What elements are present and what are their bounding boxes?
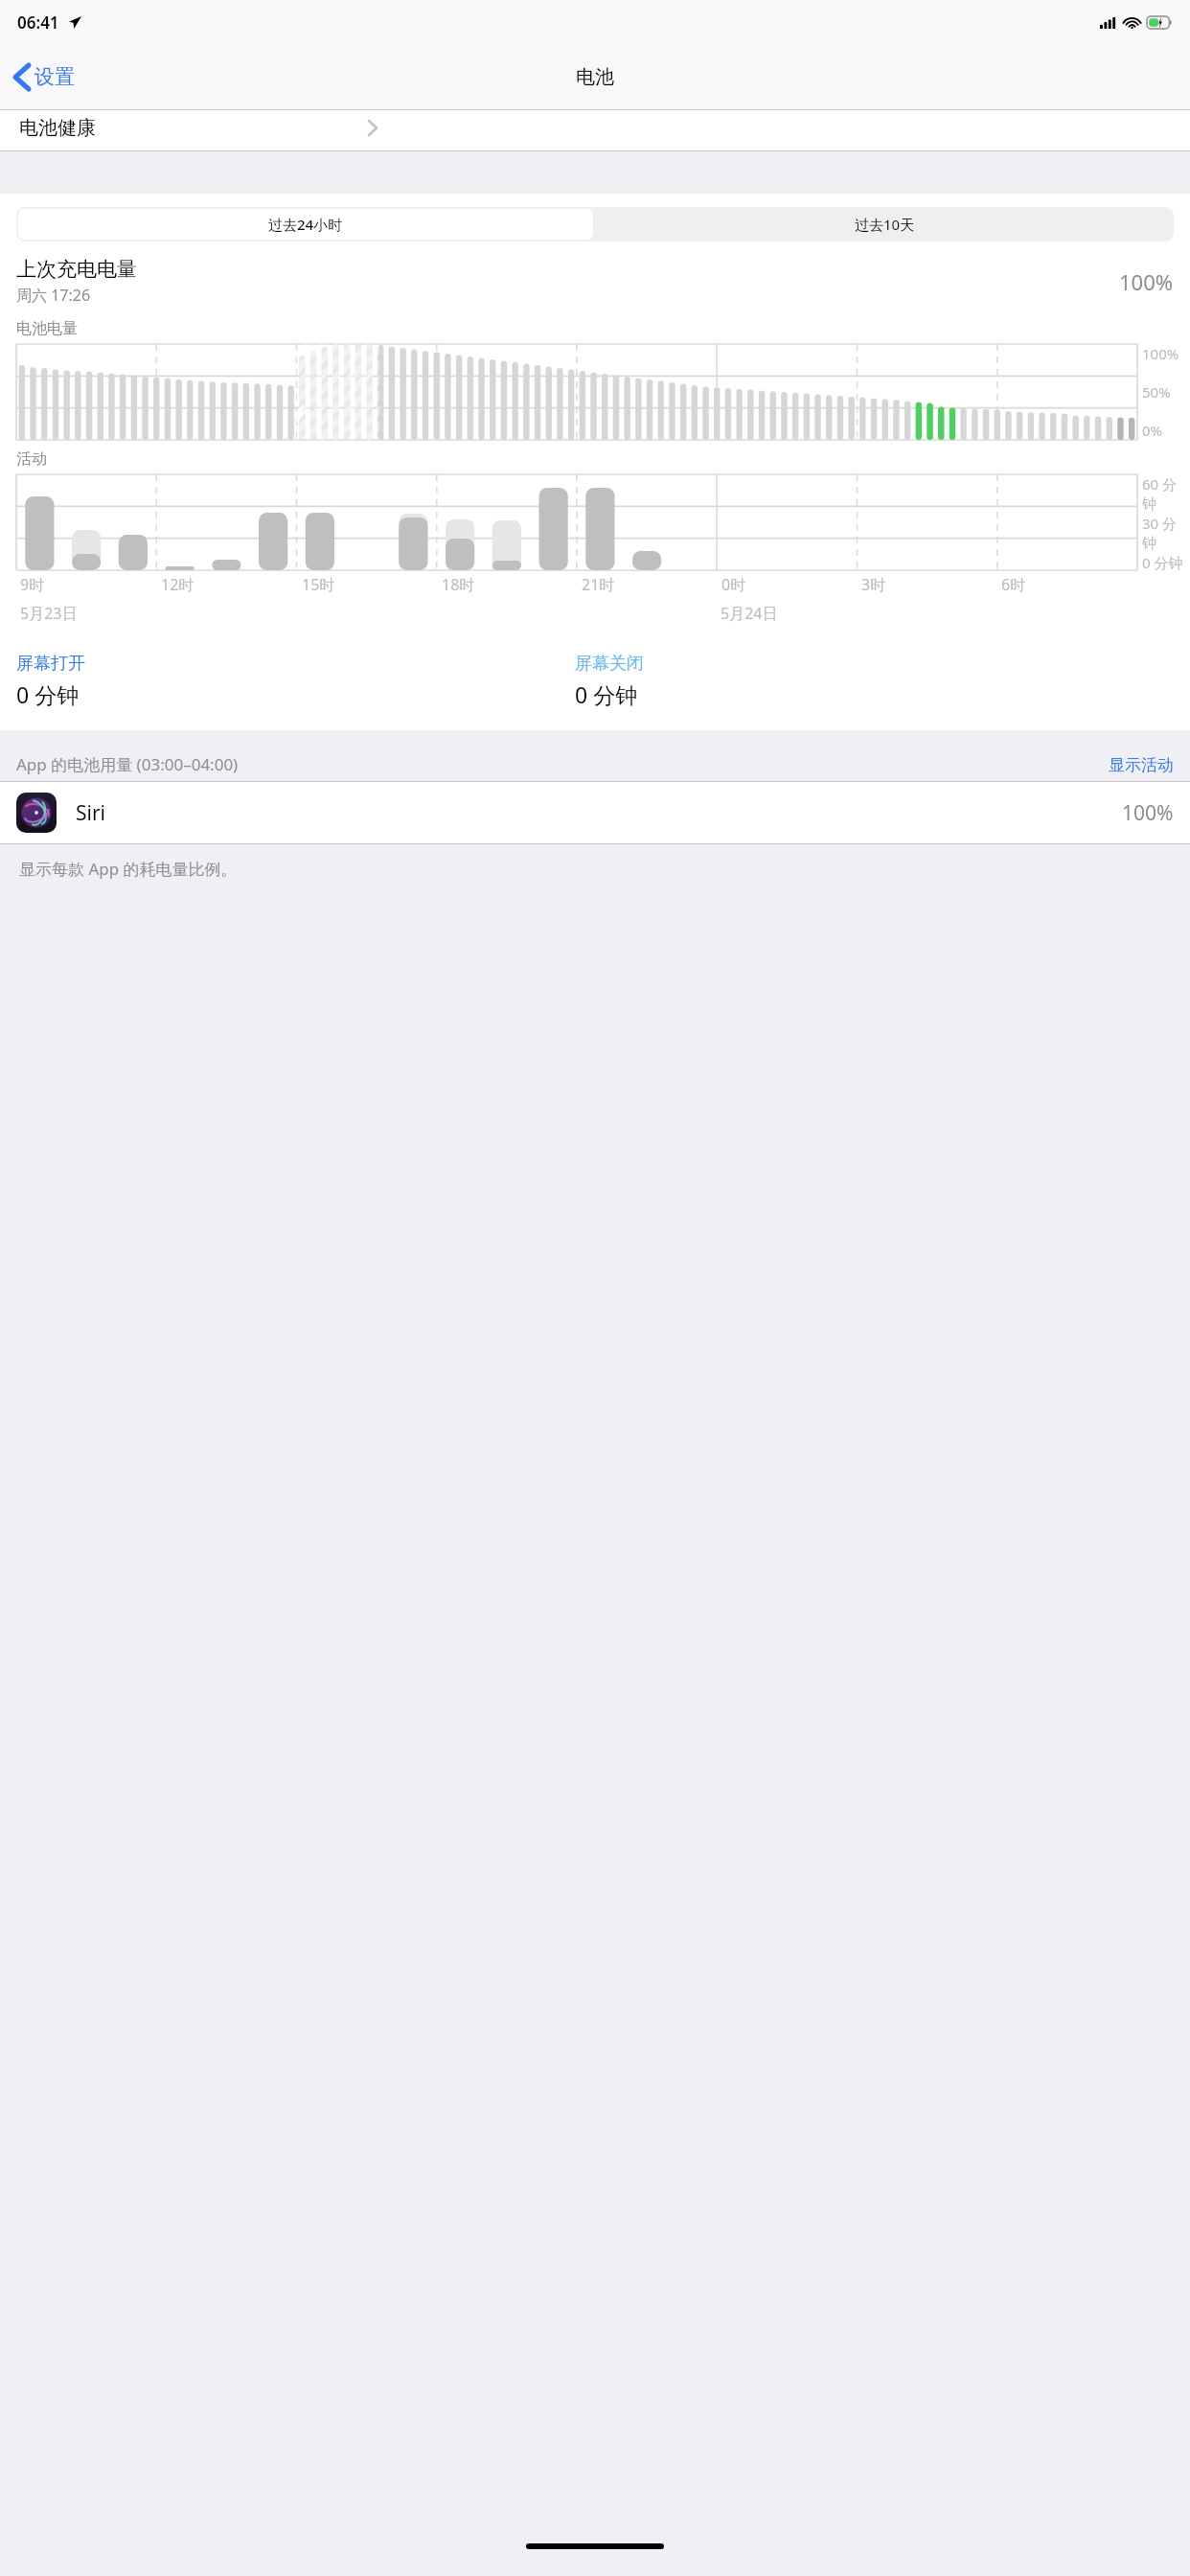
- staticText: 上次充电电量: [16, 257, 137, 282]
- staticText: 15时: [302, 574, 335, 595]
- staticText: 电池电量: [16, 319, 78, 338]
- staticText: 3时: [861, 574, 886, 595]
- staticText: 电池健康: [19, 116, 96, 140]
- staticText: 过去24小时: [268, 215, 343, 234]
- staticText: 30 分钟: [1142, 514, 1190, 553]
- staticText: 电池: [576, 65, 614, 89]
- button[interactable]: 显示活动: [1109, 755, 1174, 781]
- staticText: Siri: [76, 799, 1122, 827]
- staticText: 18时: [442, 574, 475, 595]
- staticText: 5月23日: [20, 603, 78, 624]
- staticText: 60 分钟: [1142, 474, 1190, 514]
- staticText: App 的电池用量 (03:00–04:00): [16, 753, 1109, 775]
- staticText: 100%: [1142, 344, 1179, 363]
- staticText: 100%: [1119, 267, 1174, 296]
- staticText: 0 分钟: [1142, 553, 1183, 570]
- staticText: 5月24日: [721, 603, 778, 624]
- button[interactable]: Siri: [16, 782, 1174, 843]
- staticText: 06:41: [17, 11, 59, 34]
- staticText: 显示每款 App 的耗电量比例。: [19, 858, 238, 880]
- staticText: 50%: [1142, 382, 1171, 402]
- staticText: 0 分钟: [16, 679, 80, 709]
- staticText: 9时: [20, 574, 45, 595]
- staticText: 12时: [161, 574, 195, 595]
- staticText: 100%: [1122, 799, 1174, 827]
- staticText: 0%: [1142, 421, 1163, 440]
- button[interactable]: 设置: [10, 64, 75, 89]
- button[interactable]: 过去24小时: [18, 209, 593, 240]
- staticText: 屏幕打开: [16, 653, 85, 675]
- button[interactable]: 电池健康: [0, 110, 1190, 150]
- staticText: 周六 17:26: [16, 285, 91, 306]
- staticText: 21时: [582, 574, 615, 595]
- staticText: 活动: [16, 449, 47, 469]
- staticText: 设置: [34, 64, 75, 89]
- staticText: 6时: [1001, 574, 1026, 595]
- staticText: 显示活动: [1109, 755, 1174, 775]
- staticText: 过去10天: [855, 215, 915, 234]
- staticText: 0 分钟: [575, 679, 638, 709]
- staticText: 0时: [721, 574, 746, 595]
- staticText: 屏幕关闭: [575, 653, 644, 675]
- button[interactable]: 过去10天: [595, 207, 1174, 241]
